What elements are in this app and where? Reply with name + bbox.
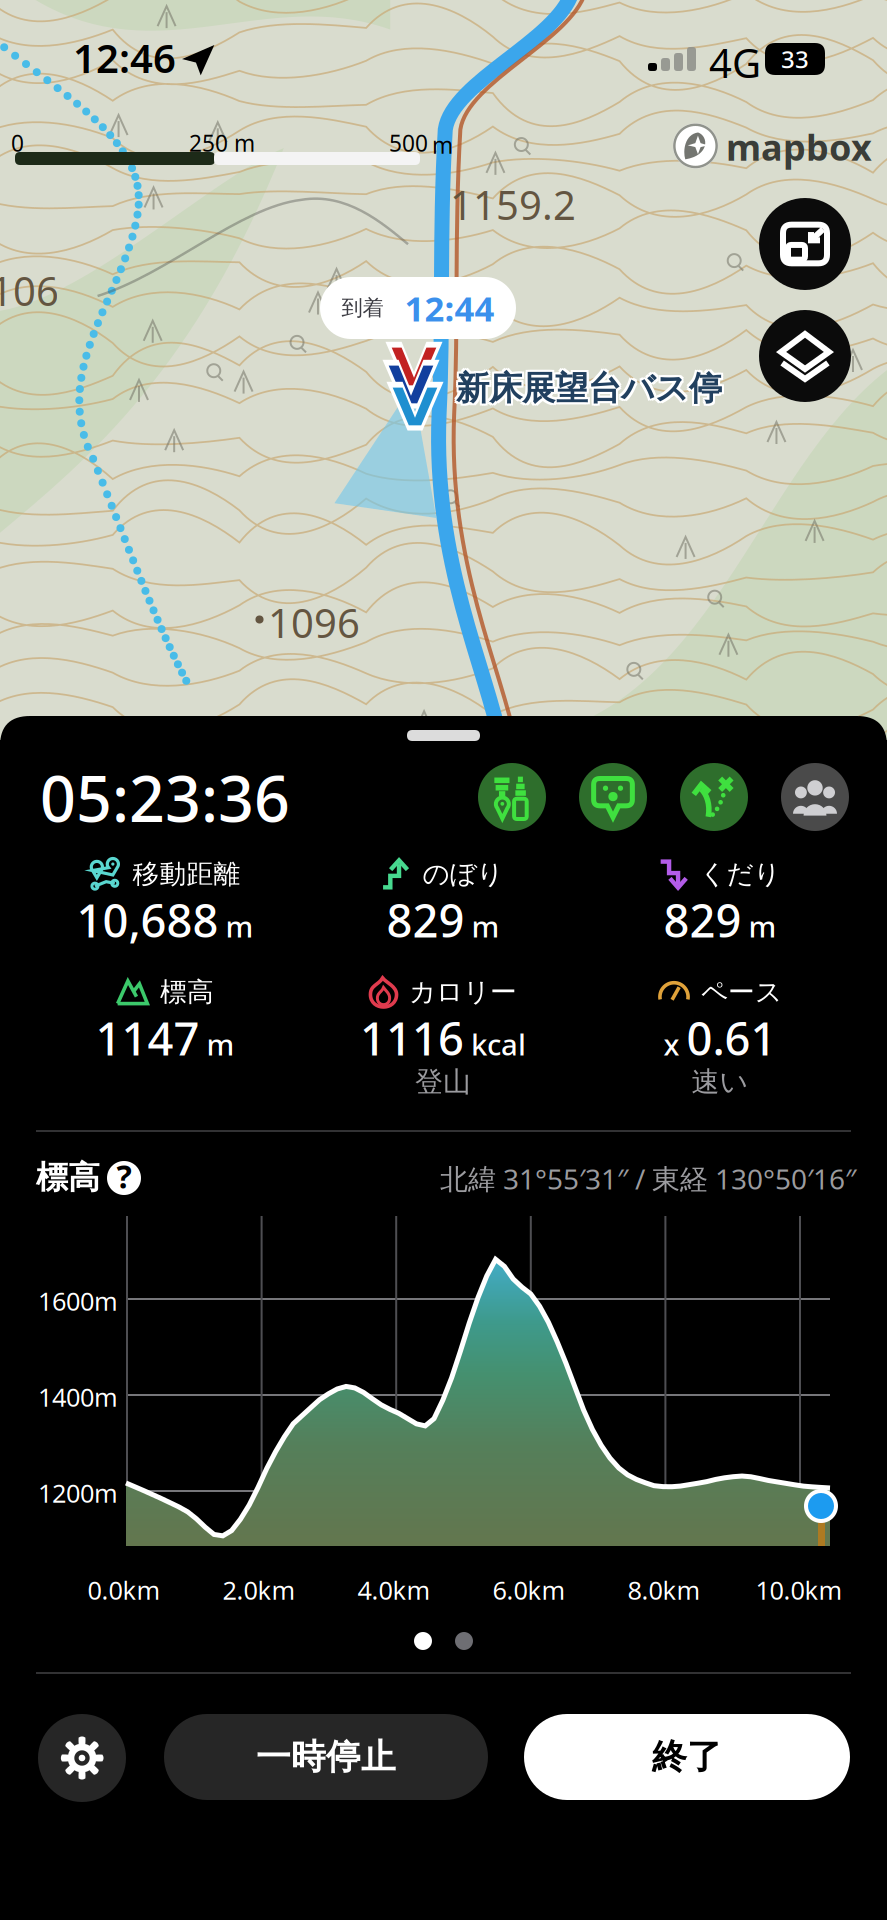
- staticText: 12:46: [73, 31, 176, 84]
- staticText: 新床展望台バス停: [456, 368, 722, 409]
- staticText: 500: [389, 128, 428, 158]
- staticText: 0.0km: [87, 1573, 160, 1607]
- button[interactable]: Reroute: [680, 763, 748, 831]
- button[interactable]: Members: [781, 763, 849, 831]
- staticText: 1147: [95, 1008, 199, 1068]
- staticText: 速い: [691, 1065, 748, 1099]
- staticText: 250 m: [189, 128, 255, 158]
- staticText: カロリー: [409, 976, 517, 1008]
- staticText: 新床展望台バス停: [454, 370, 720, 411]
- staticText: 新床展望台バス停: [456, 370, 722, 411]
- staticText: 北緯 31°55′31″ / 東経 130°50′16″: [440, 1160, 856, 1197]
- staticText: 標高: [160, 976, 214, 1008]
- staticText: 標高: [36, 1158, 100, 1197]
- staticText: のぼり: [422, 858, 503, 890]
- staticText: ?: [116, 1155, 131, 1197]
- staticText: 新床展望台バス停: [454, 368, 720, 409]
- staticText: 新床展望台バス停: [456, 366, 722, 407]
- staticText: 8.0km: [627, 1573, 700, 1607]
- staticText: 新床展望台バス停: [458, 368, 724, 409]
- staticText: 12:44: [404, 285, 494, 331]
- staticText: 1116: [360, 1008, 464, 1068]
- button[interactable]: Resize map: [759, 198, 851, 290]
- staticText: 到着: [341, 295, 383, 321]
- staticText: 2.0km: [222, 1573, 295, 1607]
- staticText: 10.0km: [755, 1573, 842, 1607]
- staticText: m: [206, 1025, 234, 1064]
- button[interactable]: 終了: [524, 1714, 850, 1800]
- staticText: 10,688: [76, 890, 218, 950]
- staticText: 新床展望台バス停: [458, 370, 724, 411]
- staticText: 終了: [652, 1736, 722, 1778]
- button[interactable]: Water sources: [478, 763, 546, 831]
- staticText: 0.61: [686, 1008, 776, 1068]
- staticText: x: [663, 1025, 679, 1064]
- staticText: 1200m: [38, 1476, 118, 1510]
- staticText: 新床展望台バス停: [454, 366, 720, 407]
- staticText: 6.0km: [492, 1573, 565, 1607]
- staticText: kcal: [471, 1025, 526, 1064]
- button[interactable]: 一時停止: [164, 1714, 488, 1800]
- staticText: 登山: [415, 1065, 471, 1099]
- staticText: 移動距離: [132, 858, 240, 890]
- staticText: ペース: [701, 976, 782, 1008]
- staticText: mapbox: [726, 123, 872, 171]
- staticText: 1400m: [38, 1380, 118, 1414]
- staticText: 106: [0, 264, 59, 317]
- staticText: 1600m: [38, 1284, 118, 1318]
- staticText: 4.0km: [357, 1573, 430, 1607]
- staticText: m: [432, 130, 453, 160]
- staticText: 新床展望台バス停: [458, 366, 724, 407]
- staticText: 一時停止: [256, 1736, 396, 1778]
- staticText: 05:23:36: [40, 756, 290, 839]
- staticText: くだり: [699, 858, 780, 890]
- button[interactable]: Settings: [38, 1714, 126, 1802]
- staticText: 829: [663, 890, 741, 950]
- staticText: 1096: [268, 596, 360, 649]
- staticText: 4G: [709, 36, 761, 89]
- staticText: m: [471, 907, 499, 946]
- staticText: m: [748, 907, 776, 946]
- staticText: 829: [386, 890, 464, 950]
- button[interactable]: Map layers: [759, 310, 851, 402]
- staticText: 0: [11, 128, 24, 158]
- staticText: 33: [781, 43, 809, 75]
- staticText: m: [225, 907, 253, 946]
- staticText: 1159.2: [450, 178, 576, 231]
- button[interactable]: Messages: [579, 763, 647, 831]
